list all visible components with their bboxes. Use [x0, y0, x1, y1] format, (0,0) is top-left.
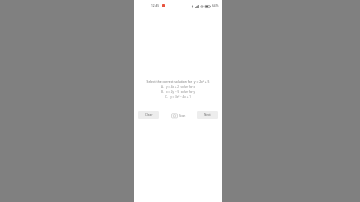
- button[interactable]: A. y = 4x + 2 solve for x: [141, 85, 215, 89]
- button[interactable]: Camera: [170, 111, 187, 120]
- staticText: A. y = 4x + 2 solve for x: [141, 85, 215, 89]
- staticText: 64%: [212, 4, 219, 8]
- staticText: B. x = 2y − 5 solve for y: [141, 90, 215, 94]
- other: Camera: [171, 112, 178, 119]
- button[interactable]: Clear: [138, 111, 159, 119]
- staticText: Select the correct solution for y = 2x² …: [141, 79, 215, 83]
- button[interactable]: Next: [197, 111, 218, 119]
- staticText: Clear: [145, 113, 153, 117]
- button[interactable]: C. y = 3x² − 4x + 1: [141, 95, 215, 99]
- staticText: 12:45: [151, 4, 160, 8]
- staticText: Next: [204, 113, 211, 117]
- staticText: Scan: [179, 114, 186, 118]
- button[interactable]: B. x = 2y − 5 solve for y: [141, 90, 215, 94]
- staticText: C. y = 3x² − 4x + 1: [141, 95, 215, 99]
